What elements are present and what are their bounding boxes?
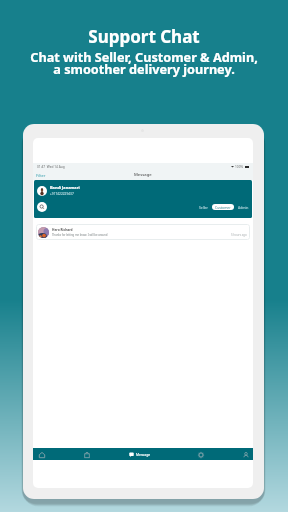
staticText: Support Chat (88, 25, 200, 48)
button[interactable]: Home (36, 449, 47, 460)
button[interactable]: Filter (33, 173, 46, 178)
staticText: Hero Richard (52, 228, 73, 232)
button[interactable]: Orders (81, 449, 92, 460)
staticText: 5 hours ago (231, 233, 247, 237)
button[interactable]: Settings (195, 449, 206, 460)
staticText: +917422229437 (50, 192, 74, 196)
button[interactable]: Message (127, 448, 153, 460)
button[interactable]: Profile (240, 449, 251, 460)
staticText: 01:47 Wed 14 Aug (37, 165, 65, 169)
button[interactable]: Search (37, 202, 47, 212)
button[interactable]: Admin (236, 205, 251, 210)
staticText: Chat with Seller, Customer & Admin, a sm… (30, 48, 258, 78)
staticText: Message (134, 172, 152, 178)
button[interactable]: Customer (212, 204, 234, 210)
staticText: Customer (215, 205, 231, 209)
staticText: Message (136, 452, 151, 457)
button[interactable]: Seller (197, 205, 210, 210)
button[interactable]: Hero Richard (36, 224, 250, 240)
staticText: Bandi Janamari (50, 185, 80, 190)
staticText: 100% (235, 165, 244, 169)
staticText: Thanks for letting me know. I will be ar… (52, 233, 108, 237)
